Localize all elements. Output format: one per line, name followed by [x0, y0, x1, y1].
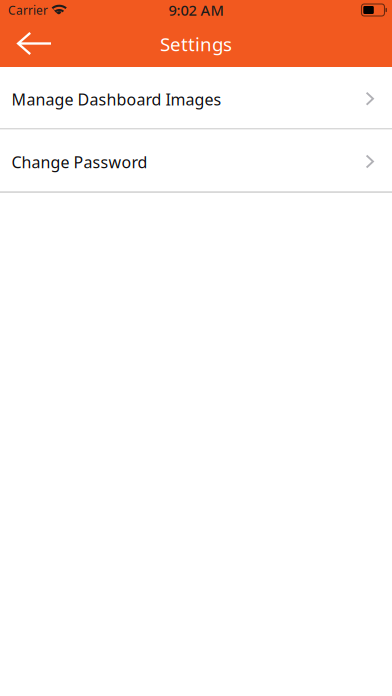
- button[interactable]: Change Password: [0, 129, 392, 191]
- staticText: Settings: [160, 32, 232, 56]
- staticText: 9:02 AM: [168, 0, 223, 20]
- staticText: Carrier: [8, 2, 48, 18]
- button[interactable]: Manage Dashboard Images: [0, 67, 392, 128]
- staticText: Change Password: [11, 151, 147, 173]
- button[interactable]: Back: [0, 21, 70, 65]
- staticText: Manage Dashboard Images: [11, 89, 221, 110]
